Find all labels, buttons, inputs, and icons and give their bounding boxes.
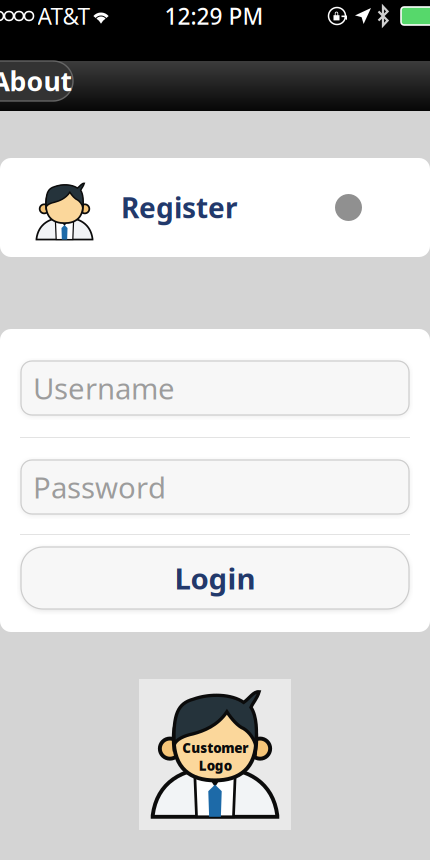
staticText: Username: [33, 368, 175, 407]
staticText: 12:29 PM: [164, 1, 263, 31]
button[interactable]: Register: [0, 158, 430, 257]
staticText: Password: [33, 467, 166, 506]
staticText: About: [0, 63, 72, 99]
staticText: Customer Logo: [182, 739, 248, 774]
staticText: Login: [174, 558, 255, 597]
staticText: AT&T: [37, 1, 90, 31]
button[interactable]: Login: [0, 547, 430, 609]
staticText: Register: [121, 189, 238, 226]
button[interactable]: About: [0, 61, 73, 101]
